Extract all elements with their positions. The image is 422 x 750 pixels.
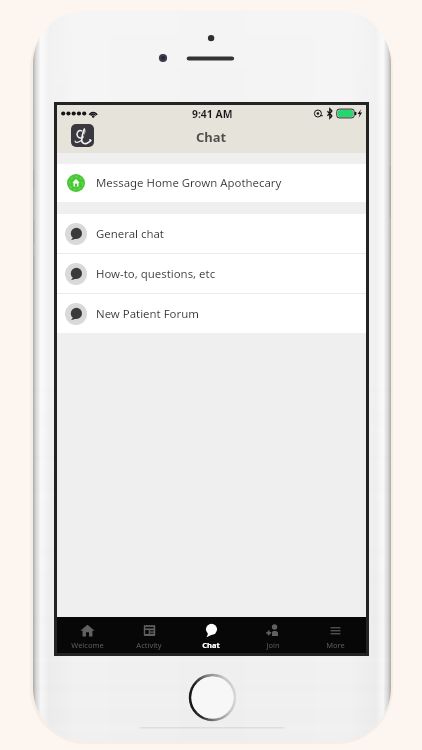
staticText: New Patient Forum xyxy=(96,306,199,322)
button[interactable]: New Patient Forum xyxy=(57,294,366,333)
button[interactable]: Leafly logo xyxy=(71,124,94,147)
staticText: 9:41 AM xyxy=(192,107,233,121)
staticText: Welcome xyxy=(71,640,104,650)
button[interactable]: How-to, questions, etc xyxy=(57,254,366,293)
button[interactable]: Activity xyxy=(118,617,180,650)
button[interactable]: Chat xyxy=(180,617,242,650)
button[interactable]: Message Home Grown Apothecary xyxy=(57,164,366,202)
staticText: Join xyxy=(266,640,280,650)
staticText: Chat xyxy=(202,640,220,650)
button[interactable]: General chat xyxy=(57,214,366,253)
staticText: Message Home Grown Apothecary xyxy=(96,175,282,191)
staticText: More xyxy=(326,640,345,650)
staticText: How-to, questions, etc xyxy=(96,266,216,282)
button[interactable]: Welcome xyxy=(57,617,118,650)
staticText: Chat xyxy=(196,128,227,146)
staticText: General chat xyxy=(96,226,164,242)
button[interactable]: Join xyxy=(242,617,304,650)
staticText: Activity xyxy=(136,640,162,650)
button[interactable]: More xyxy=(304,617,366,650)
